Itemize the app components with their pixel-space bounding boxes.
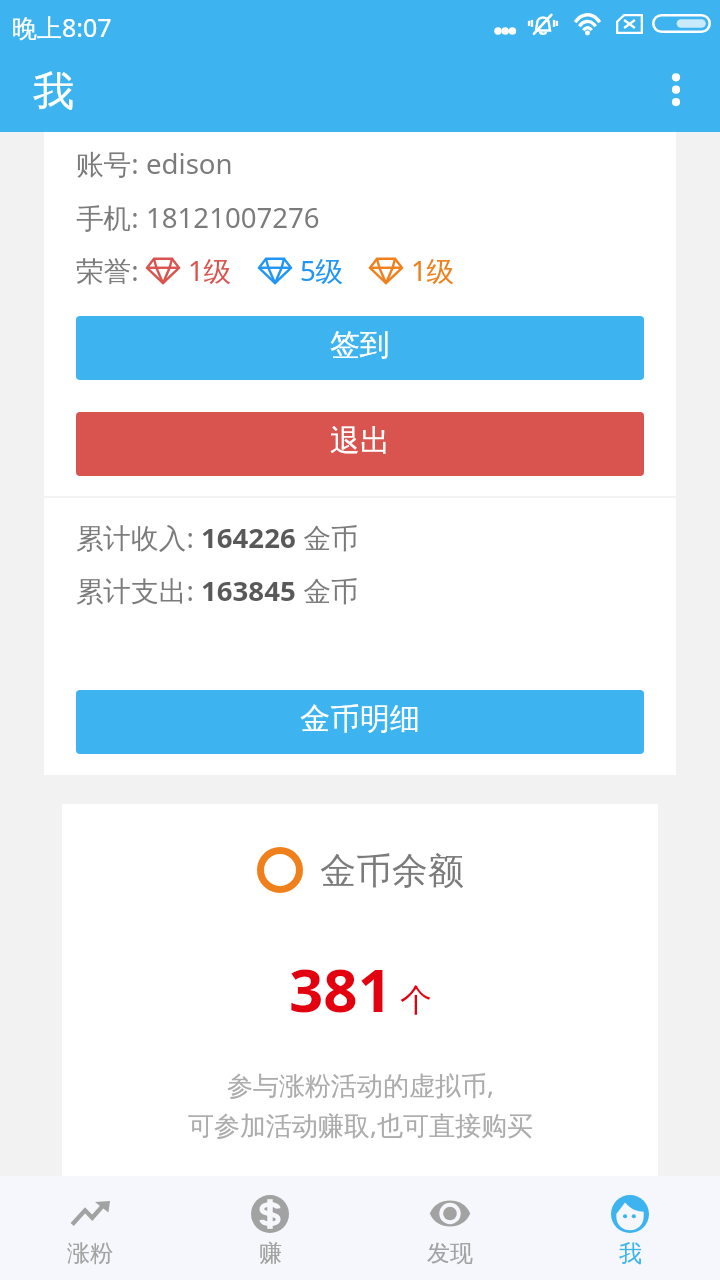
button[interactable]: 赚 [180,1176,360,1280]
staticText: 1级 [188,251,232,289]
staticText: 我 [33,66,74,118]
staticText: 累计收入: [76,518,201,556]
staticText: 我 [619,1239,642,1268]
staticText: 金币 [296,571,359,609]
staticText: 381 [289,948,392,1030]
staticText: edison [146,144,233,182]
staticText: 账号: [76,144,146,182]
staticText: 金币 [296,518,359,556]
button[interactable]: More options [644,56,720,132]
staticText: 金币明细 [300,700,420,738]
button[interactable]: 我 [540,1176,720,1280]
staticText: 金币余额 [320,848,464,893]
staticText: 赚 [259,1239,282,1268]
button[interactable]: 涨粉 [0,1176,180,1280]
staticText: 累计支出: [76,571,201,609]
staticText: 个 [400,980,432,1020]
staticText: 退出 [330,422,390,460]
staticText: 发现 [427,1239,473,1268]
staticText: 涨粉 [67,1239,113,1268]
button[interactable]: 发现 [360,1176,540,1280]
staticText: 可参加活动赚取,也可直接购买 [188,1107,533,1143]
staticText: 18121007276 [146,198,320,236]
staticText: 签到 [330,326,390,364]
staticText: 164226 [201,518,296,556]
button[interactable]: 退出 [76,412,644,476]
staticText: 晚上8:07 [12,10,112,44]
button[interactable]: 签到 [76,316,644,380]
staticText: 手机: [76,198,146,236]
staticText: 1级 [411,251,455,289]
staticText: 荣誉: [76,251,146,289]
button[interactable]: 金币明细 [76,690,644,754]
staticText: 参与涨粉活动的虚拟币, [227,1067,494,1103]
staticText: 163845 [201,571,296,609]
staticText: 5级 [300,251,344,289]
